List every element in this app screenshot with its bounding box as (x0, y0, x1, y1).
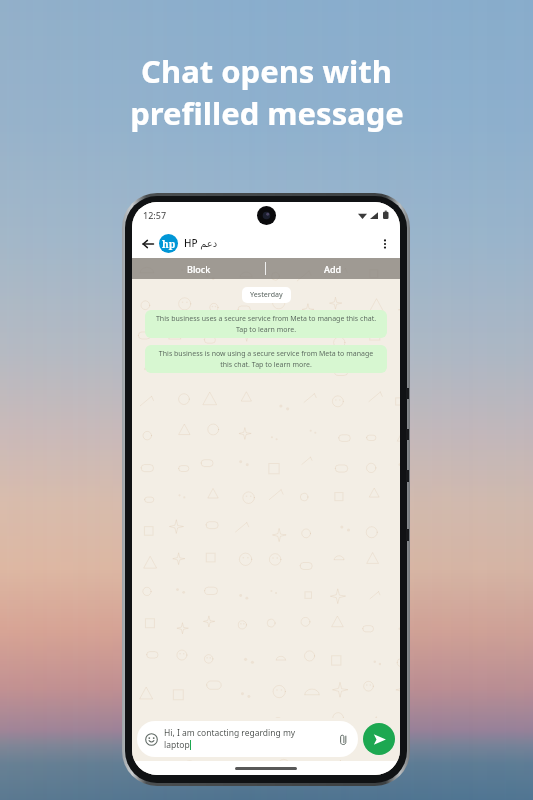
button[interactable]: Add (266, 258, 400, 279)
button[interactable]: More options (376, 235, 393, 252)
staticText: hp (162, 237, 176, 251)
button[interactable]: Yesterday (242, 287, 291, 303)
staticText: HP دعم (184, 236, 218, 250)
button[interactable]: HP دعم (184, 236, 376, 250)
staticText: This business is now using a secure serv… (153, 349, 379, 369)
staticText: Yesterday (250, 290, 283, 300)
staticText: Hi, I am contacting regarding my (164, 727, 296, 739)
button[interactable]: This business uses a secure service from… (145, 310, 387, 338)
other: Emoji (145, 733, 158, 746)
staticText: This business uses a secure service from… (153, 314, 379, 334)
staticText: laptop (164, 739, 190, 751)
button[interactable]: Back (139, 235, 156, 252)
button[interactable]: Block (132, 258, 265, 279)
staticText: Block (187, 263, 211, 275)
staticText: 12:57 (143, 209, 167, 221)
staticText: Chat opens with (141, 50, 392, 92)
button[interactable]: This business is now using a secure serv… (145, 345, 387, 373)
button[interactable]: Send (363, 723, 395, 755)
button[interactable]: Emoji (137, 721, 358, 757)
other: Attach file (337, 733, 350, 746)
staticText: prefilled message (130, 92, 404, 134)
staticText: Add (324, 263, 342, 275)
